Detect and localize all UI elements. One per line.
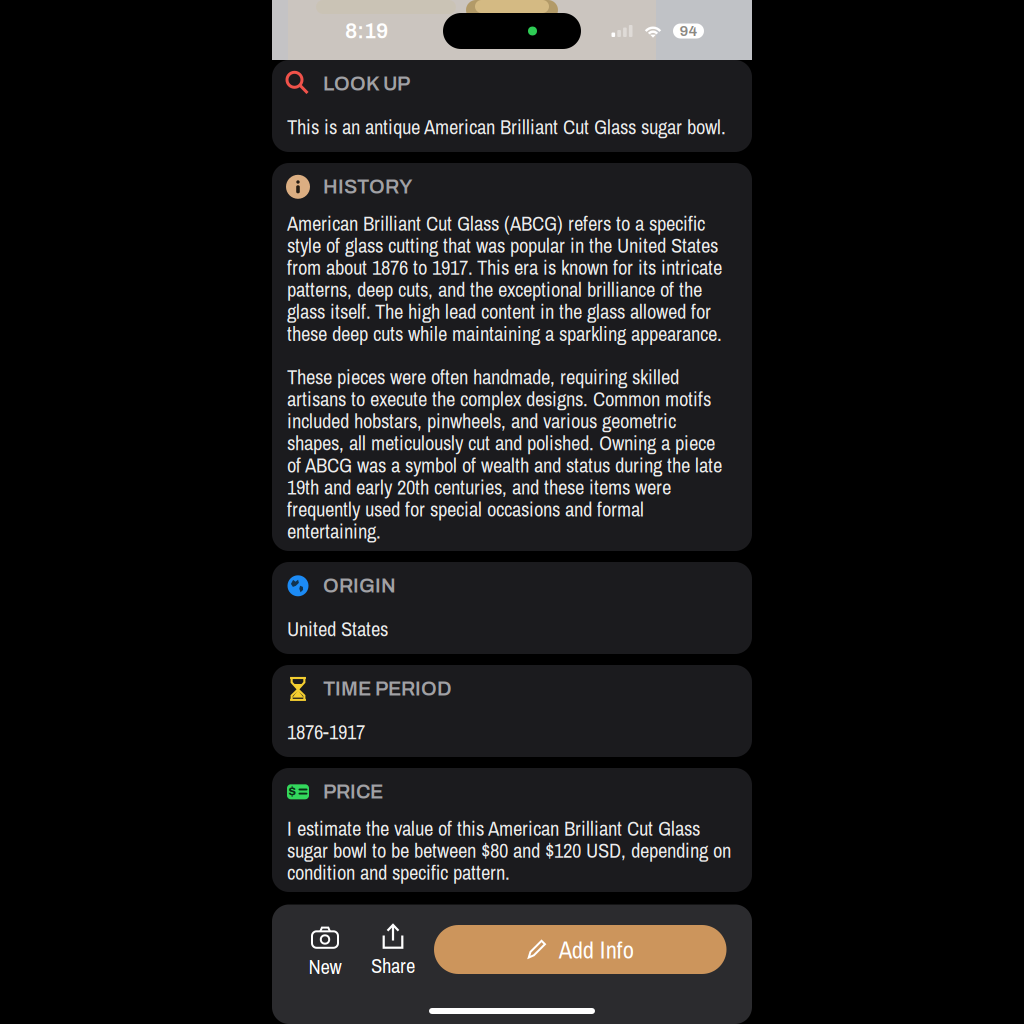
staticText: 1876-1917 xyxy=(287,718,365,746)
staticText: $ xyxy=(288,784,296,799)
staticText: New xyxy=(308,952,341,980)
staticText: TIME PERIOD xyxy=(323,678,452,700)
staticText: Share xyxy=(371,951,415,979)
staticText: American Brilliant Cut Glass (ABCG) refe… xyxy=(287,209,722,347)
staticText: ORIGIN xyxy=(323,575,396,597)
staticText: LOOK UP xyxy=(323,73,410,95)
staticText: I estimate the value of this American Br… xyxy=(287,814,731,886)
staticText: PRICE xyxy=(323,781,383,803)
staticText: 8:19 xyxy=(345,19,388,43)
staticText: These pieces were often handmade, requir… xyxy=(287,363,734,545)
staticText: HISTORY xyxy=(323,176,413,198)
staticText: Add Info xyxy=(559,933,634,966)
button[interactable]: Add Info xyxy=(434,925,726,974)
staticText: 94 xyxy=(679,23,697,39)
staticText: This is an antique American Brilliant Cu… xyxy=(287,113,726,141)
button[interactable]: New xyxy=(272,904,357,980)
staticText: United States xyxy=(287,615,388,643)
button[interactable]: Share xyxy=(357,904,425,979)
